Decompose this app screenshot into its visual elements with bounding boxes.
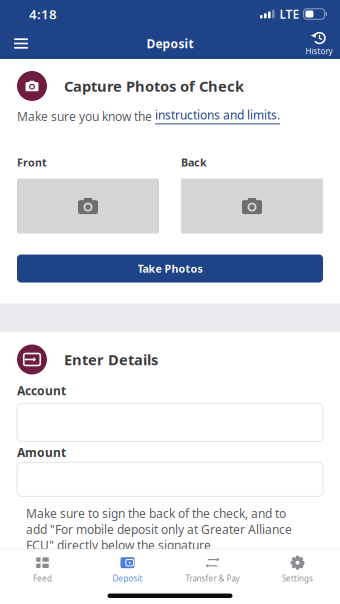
staticText: Settings — [282, 573, 313, 584]
button[interactable]: Deposit — [85, 551, 170, 588]
staticText: Amount — [17, 444, 66, 460]
button[interactable]: Settings — [255, 551, 340, 588]
staticText: Take Photos — [137, 261, 202, 276]
button[interactable]: Capture Back of check — [181, 178, 323, 233]
staticText: Feed — [33, 573, 52, 584]
button[interactable]: instructions and limits. — [155, 107, 280, 124]
staticText: Make sure you know the — [17, 108, 155, 124]
staticText: 4:18 — [29, 5, 57, 23]
staticText: Capture Photos of Check — [64, 76, 244, 96]
button[interactable]: Menu — [5, 28, 37, 59]
button[interactable]: Take Photos — [17, 254, 323, 282]
staticText: Front — [17, 155, 47, 169]
staticText: Make sure to sign the back of the check,… — [26, 505, 292, 553]
staticText: Deposit — [112, 573, 142, 584]
staticText: Back — [181, 155, 207, 169]
staticText: LTE — [280, 6, 300, 22]
staticText: Deposit — [146, 35, 193, 51]
staticText: Enter Details — [64, 350, 158, 369]
button[interactable]: History — [299, 28, 339, 59]
staticText: Account — [17, 382, 66, 398]
button[interactable]: Capture Front of check — [17, 178, 159, 233]
button[interactable]: Feed — [0, 551, 85, 588]
staticText: Transfer & Pay — [185, 573, 239, 584]
staticText: History — [305, 46, 332, 56]
staticText: instructions and limits. — [155, 107, 280, 123]
button[interactable]: Transfer & Pay — [170, 551, 255, 588]
